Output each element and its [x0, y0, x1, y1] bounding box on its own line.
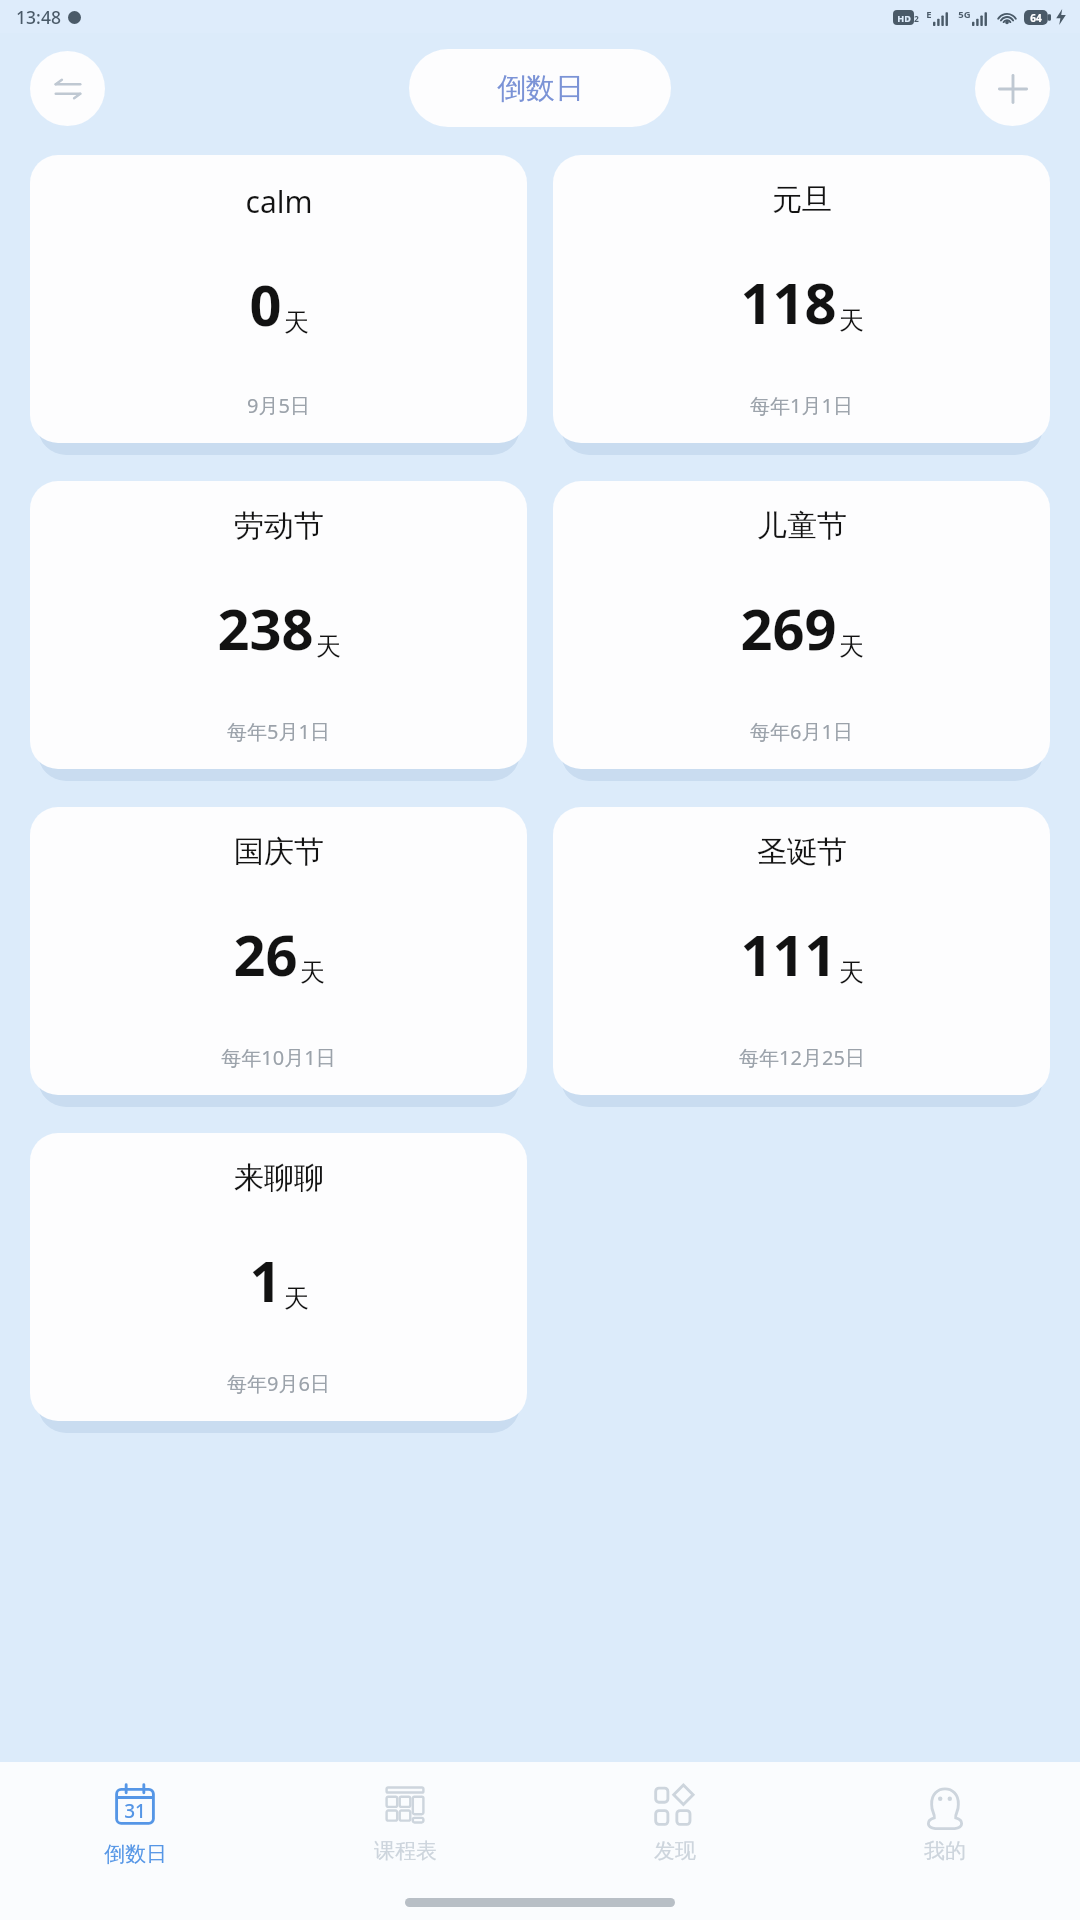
staticText: 发现	[654, 1838, 696, 1864]
staticText: 每年10月1日	[221, 1044, 336, 1071]
staticText: 天	[284, 1283, 309, 1314]
staticText: 课程表	[374, 1838, 437, 1864]
staticText: 天	[839, 957, 864, 988]
staticText: 118	[740, 264, 837, 340]
button[interactable]: 来聊聊	[30, 1133, 527, 1421]
staticText: 每年1月1日	[750, 392, 853, 419]
button[interactable]: 课程表	[270, 1762, 540, 1884]
staticText: 5G	[958, 8, 971, 21]
staticText: 每年5月1日	[227, 718, 330, 745]
staticText: 31	[124, 1798, 146, 1824]
staticText: 111	[740, 916, 837, 992]
staticText: 1	[249, 1242, 282, 1318]
staticText: calm	[245, 181, 313, 222]
button[interactable]: calm	[30, 155, 527, 443]
button[interactable]: 发现	[540, 1762, 810, 1884]
staticText: 圣诞节	[757, 833, 847, 871]
staticText: 每年9月6日	[227, 1370, 330, 1397]
staticText: 来聊聊	[234, 1159, 324, 1197]
staticText: 倒数日	[497, 70, 584, 107]
staticText: 我的	[924, 1838, 966, 1864]
staticText: 每年12月25日	[739, 1044, 865, 1071]
staticText: 劳动节	[234, 507, 324, 545]
staticText: 天	[284, 307, 309, 338]
staticText: 天	[316, 631, 341, 662]
button[interactable]: 劳动节	[30, 481, 527, 769]
staticText: 64	[1030, 11, 1042, 25]
staticText: 元旦	[772, 181, 832, 219]
staticText: 0	[249, 266, 282, 342]
button[interactable]: 我的	[810, 1762, 1080, 1884]
button[interactable]: 元旦	[553, 155, 1050, 443]
button[interactable]: 31	[0, 1762, 270, 1884]
button[interactable]: 圣诞节	[553, 807, 1050, 1095]
staticText: 2	[914, 13, 919, 25]
button[interactable]: Switch view	[30, 51, 105, 126]
staticText: 13:48	[16, 5, 61, 29]
staticText: 儿童节	[757, 507, 847, 545]
button[interactable]: 儿童节	[553, 481, 1050, 769]
staticText: 天	[300, 957, 325, 988]
staticText: 国庆节	[234, 833, 324, 871]
staticText: 238	[217, 590, 314, 666]
staticText: 269	[740, 590, 837, 666]
staticText: 天	[839, 631, 864, 662]
staticText: 26	[233, 916, 298, 992]
button[interactable]: 倒数日	[409, 49, 671, 127]
staticText: 每年6月1日	[750, 718, 853, 745]
staticText: 9月5日	[247, 392, 310, 419]
staticText: E	[926, 8, 932, 21]
button[interactable]: Add countdown	[975, 51, 1050, 126]
staticText: 天	[839, 305, 864, 336]
button[interactable]: 国庆节	[30, 807, 527, 1095]
staticText: 倒数日	[104, 1841, 167, 1867]
staticText: HD	[897, 12, 911, 24]
